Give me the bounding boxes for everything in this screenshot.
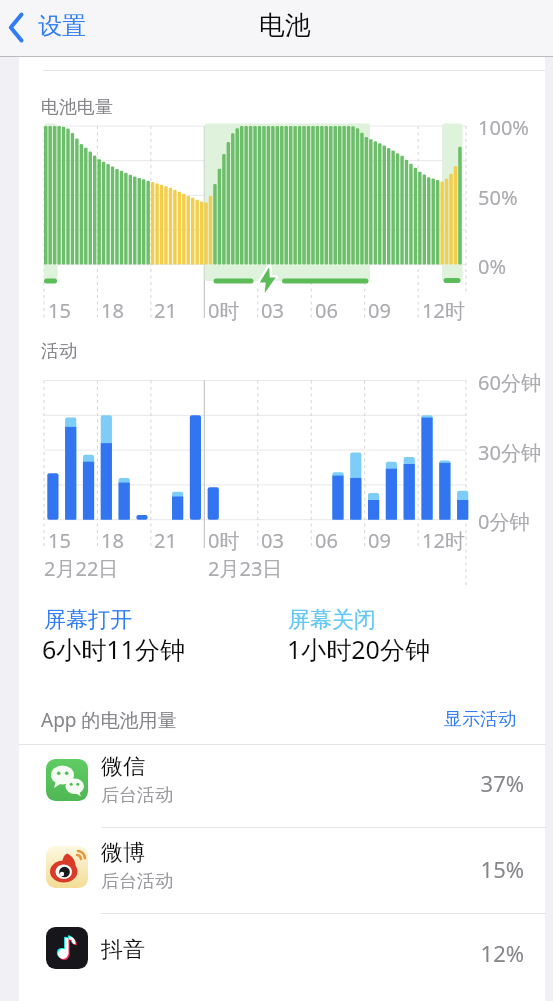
staticText: 12时 xyxy=(422,297,465,324)
staticText: 微信 xyxy=(101,753,145,781)
staticText: 电池电量 xyxy=(41,96,113,119)
staticText: App 的电池用量 xyxy=(41,707,177,733)
staticText: 21 xyxy=(154,527,177,554)
staticText: 100% xyxy=(478,114,529,141)
staticText: 18 xyxy=(101,297,124,324)
staticText: 后台活动 xyxy=(101,784,173,807)
staticText: 37% xyxy=(394,768,524,798)
staticText: 0时 xyxy=(208,297,240,324)
staticText: 显示活动 xyxy=(391,708,516,731)
staticText: 后台活动 xyxy=(101,870,173,893)
staticText: 0% xyxy=(478,253,507,280)
button[interactable] xyxy=(19,745,546,827)
staticText: 6小时11分钟 xyxy=(42,632,185,666)
staticText: 03 xyxy=(261,297,284,324)
staticText: 微博 xyxy=(101,839,145,867)
staticText: 15 xyxy=(48,297,71,324)
staticText: 0时 xyxy=(208,527,240,554)
staticText: 06 xyxy=(315,297,338,324)
staticText: 06 xyxy=(315,527,338,554)
staticText: 21 xyxy=(154,297,177,324)
staticText: 12时 xyxy=(422,527,465,554)
staticText: 60分钟 xyxy=(478,369,541,396)
staticText: 1小时20分钟 xyxy=(287,632,430,666)
staticText: 设置 xyxy=(38,11,86,41)
button[interactable]: 设置 xyxy=(4,7,114,49)
staticText: 活动 xyxy=(41,340,77,363)
staticText: 抖音 xyxy=(101,936,145,964)
staticText: 2月23日 xyxy=(208,555,283,582)
staticText: 电池 xyxy=(259,9,311,42)
staticText: 12% xyxy=(394,938,524,968)
staticText: 0分钟 xyxy=(478,508,530,535)
staticText: 09 xyxy=(368,527,391,554)
button[interactable]: 显示活动 xyxy=(400,703,525,733)
staticText: 2月22日 xyxy=(44,555,119,582)
staticText: 09 xyxy=(368,297,391,324)
button[interactable] xyxy=(19,828,546,913)
button[interactable] xyxy=(19,914,546,1001)
staticText: 15% xyxy=(394,854,524,884)
staticText: 屏幕关闭 xyxy=(288,606,376,634)
staticText: 03 xyxy=(261,527,284,554)
staticText: 50% xyxy=(478,184,518,211)
staticText: 15 xyxy=(48,527,71,554)
staticText: 屏幕打开 xyxy=(44,606,132,634)
staticText: 18 xyxy=(101,527,124,554)
staticText: 30分钟 xyxy=(478,439,541,466)
